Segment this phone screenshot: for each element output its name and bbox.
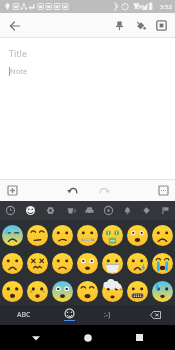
button[interactable]: Emoji 17 — [75, 277, 100, 305]
button[interactable]: Emoji 1 — [25, 221, 50, 249]
button[interactable]: More options — [155, 182, 171, 198]
button[interactable]: Emoji 20 — [150, 277, 175, 305]
staticText: :-) — [104, 310, 111, 320]
button[interactable]: Emoji 0 — [0, 221, 25, 249]
button[interactable]: Emoji category 8 — [137, 201, 156, 220]
button[interactable]: Home — [73, 325, 103, 350]
button[interactable]: Emoji 16 — [50, 277, 75, 305]
button[interactable]: Emoji 5 — [125, 221, 150, 249]
button[interactable]: Kaomoji — [94, 305, 120, 325]
button[interactable]: Emoji 13 — [150, 249, 175, 277]
button[interactable]: Emoji category 9 — [156, 201, 175, 220]
button[interactable]: Emoji category 5 — [80, 201, 99, 220]
button[interactable]: Emoji 4 — [100, 221, 125, 249]
button[interactable]: Undo — [65, 182, 81, 198]
staticText: 73% — [134, 3, 145, 10]
button[interactable]: Back — [4, 15, 26, 37]
staticText: Title — [9, 47, 27, 59]
button[interactable]: Back — [21, 325, 51, 350]
button[interactable]: Emoji category 1 — [0, 201, 20, 220]
button[interactable]: Backspace — [135, 305, 175, 325]
button[interactable]: Emoji 9 — [50, 249, 75, 277]
button[interactable]: Emoji 12 — [125, 249, 150, 277]
button[interactable]: Redo — [95, 182, 111, 198]
button[interactable]: Pin — [109, 15, 130, 36]
button[interactable]: Emoji 14 — [0, 277, 25, 305]
button[interactable]: Emoji 11 — [100, 249, 125, 277]
button[interactable]: Emoji 7 — [0, 249, 25, 277]
button[interactable]: Emoji 8 — [25, 249, 50, 277]
staticText: 3:52 — [160, 3, 172, 11]
button[interactable]: Emoji 3 — [75, 221, 100, 249]
button[interactable]: Emoji 2 — [50, 221, 75, 249]
button[interactable]: Add — [4, 182, 20, 198]
button[interactable]: Emoji — [56, 305, 82, 325]
button[interactable]: ABC — [0, 305, 48, 325]
button[interactable]: Emoji category 2 — [20, 201, 40, 220]
button[interactable]: Recents — [124, 325, 154, 350]
button[interactable]: Emoji category 3 — [40, 201, 60, 220]
button[interactable]: Emoji 18 — [100, 277, 125, 305]
button[interactable]: Emoji category 4 — [60, 201, 80, 220]
button[interactable]: Emoji 19 — [125, 277, 150, 305]
staticText: ABC — [17, 310, 31, 320]
button[interactable]: Change color — [130, 15, 151, 36]
staticText: Note — [10, 66, 28, 76]
button[interactable]: Emoji category 7 — [118, 201, 137, 220]
button[interactable]: Archive — [151, 15, 172, 36]
button[interactable]: Emoji 6 — [150, 221, 175, 249]
button[interactable]: Emoji 15 — [25, 277, 50, 305]
button[interactable]: Emoji 10 — [75, 249, 100, 277]
button[interactable]: Emoji category 6 — [99, 201, 118, 220]
